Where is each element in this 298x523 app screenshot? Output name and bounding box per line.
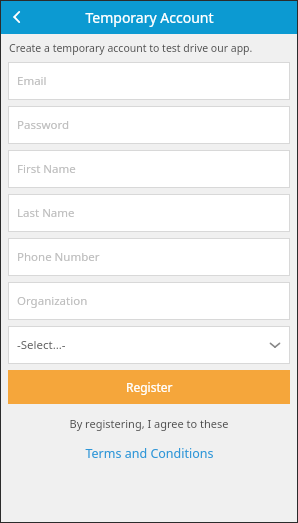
button[interactable]: Phone Number: [8, 238, 290, 276]
staticText: By registering, I agree to these: [0, 416, 298, 431]
staticText: Temporary Account: [85, 8, 214, 27]
button[interactable]: Terms and Conditions: [0, 445, 298, 462]
staticText: Phone Number: [17, 249, 100, 265]
button[interactable]: Back: [0, 0, 34, 34]
staticText: Last Name: [17, 205, 75, 221]
staticText: Register: [126, 379, 173, 395]
button[interactable]: Password: [8, 106, 290, 144]
staticText: Create a temporary account to test drive…: [9, 41, 253, 55]
button[interactable]: -Select...-: [8, 326, 290, 364]
button[interactable]: Email: [8, 62, 290, 100]
staticText: Terms and Conditions: [85, 445, 214, 462]
staticText: Organization: [17, 293, 88, 309]
staticText: -Select...-: [17, 337, 66, 353]
button[interactable]: Register: [8, 370, 290, 404]
staticText: Password: [17, 117, 70, 133]
button[interactable]: Organization: [8, 282, 290, 320]
button[interactable]: First Name: [8, 150, 290, 188]
button[interactable]: Last Name: [8, 194, 290, 232]
staticText: Email: [17, 73, 47, 89]
staticText: First Name: [17, 161, 76, 177]
